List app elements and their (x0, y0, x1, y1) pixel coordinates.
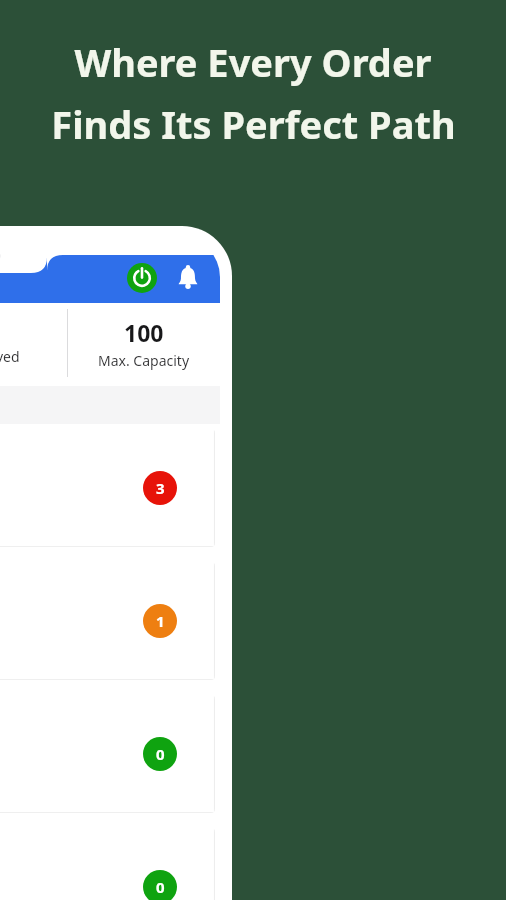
staticText: ved (0, 347, 20, 366)
staticText: 100 (124, 317, 164, 348)
staticText: Max. Capacity (98, 351, 190, 370)
button[interactable]: 100 (68, 303, 220, 383)
staticText: 0 (156, 744, 165, 764)
staticText: 3 (156, 478, 165, 498)
button[interactable]: Notifications (172, 262, 204, 294)
button[interactable]: Power toggle (124, 260, 160, 296)
button[interactable]: ved (0, 303, 67, 383)
staticText: 1 (156, 611, 165, 631)
staticText: Where Every Order (74, 36, 432, 88)
button[interactable]: 0 (0, 695, 215, 813)
button[interactable]: 1 (0, 562, 215, 680)
button[interactable]: 3 (0, 429, 215, 547)
button[interactable]: 0 (0, 828, 215, 900)
staticText: Finds Its Perfect Path (51, 98, 456, 150)
staticText: 0 (156, 877, 165, 897)
